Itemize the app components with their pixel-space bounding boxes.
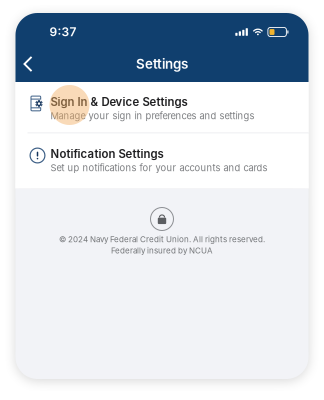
button[interactable]: Back — [15, 50, 40, 78]
staticText: Federally insured by NCUA — [111, 246, 213, 255]
staticText: Settings — [136, 56, 188, 72]
staticText: Set up notifications for your accounts a… — [50, 162, 267, 173]
staticText: Notification Settings — [50, 147, 163, 161]
staticText: 9:37 — [49, 25, 76, 39]
staticText: © 2024 Navy Federal Credit Union. All ri… — [59, 234, 265, 244]
staticText: Sign In & Device Settings — [50, 95, 187, 109]
button[interactable]: Notification Settings — [15, 133, 308, 188]
staticText: Manage your sign in preferences and sett… — [50, 110, 254, 121]
button[interactable]: Sign In & Device Settings — [15, 82, 308, 132]
